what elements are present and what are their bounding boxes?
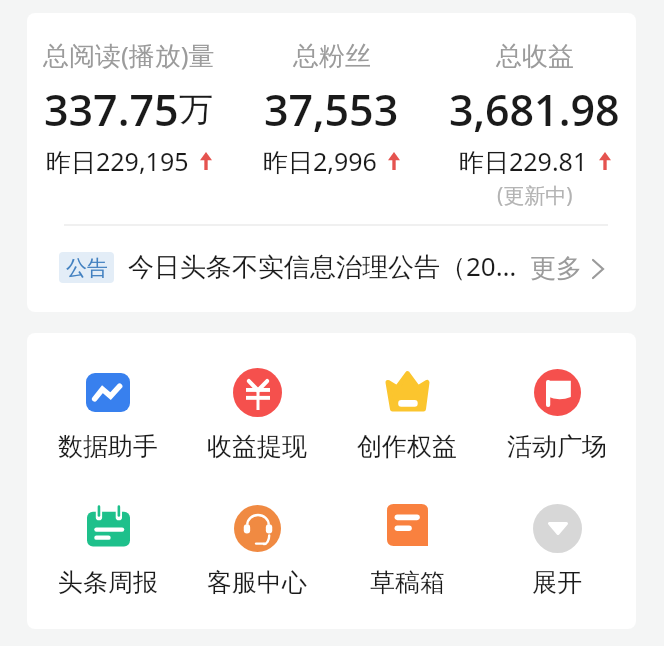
staticText: 更多	[530, 252, 582, 285]
staticText: 活动广场	[507, 431, 607, 462]
button[interactable]: 头条周报	[33, 503, 182, 598]
button[interactable]: 活动广场	[482, 367, 632, 462]
staticText: 客服中心	[207, 567, 307, 598]
staticText: 总收益	[496, 40, 574, 73]
other: More announcements	[592, 259, 604, 279]
staticText: 今日头条不实信息治理公告（2023年第4期）	[128, 248, 518, 284]
staticText: 公告	[66, 255, 108, 281]
staticText: 展开	[532, 567, 582, 598]
staticText: (更新中)	[497, 181, 573, 210]
button[interactable]: 总阅读(播放)量	[27, 39, 230, 178]
staticText: 数据助手	[58, 431, 158, 462]
button[interactable]: 客服中心	[182, 503, 332, 598]
staticText: 昨日229,195	[46, 144, 189, 178]
button[interactable]: 数据助手	[33, 367, 182, 462]
staticText: 总阅读(播放)量	[43, 37, 215, 70]
button[interactable]: 创作权益	[332, 367, 482, 462]
button[interactable]: 公告	[27, 226, 636, 309]
button[interactable]: 总收益	[433, 39, 636, 210]
staticText: 头条周报	[58, 567, 158, 598]
staticText: 337.75	[44, 80, 179, 139]
staticText: 总粉丝	[293, 40, 371, 73]
staticText: 昨日229.81	[459, 144, 588, 178]
button[interactable]: 草稿箱	[332, 503, 482, 598]
staticText: 草稿箱	[370, 567, 445, 598]
staticText: 万	[179, 88, 213, 131]
button[interactable]: 展开	[482, 503, 632, 598]
staticText: 昨日2,996	[263, 144, 377, 178]
staticText: 收益提现	[207, 431, 307, 462]
button[interactable]: 总粉丝	[230, 39, 433, 178]
button[interactable]: 收益提现	[182, 367, 332, 462]
staticText: 创作权益	[357, 431, 457, 462]
staticText: 37,553	[264, 80, 399, 139]
staticText: 3,681.98	[449, 80, 620, 139]
